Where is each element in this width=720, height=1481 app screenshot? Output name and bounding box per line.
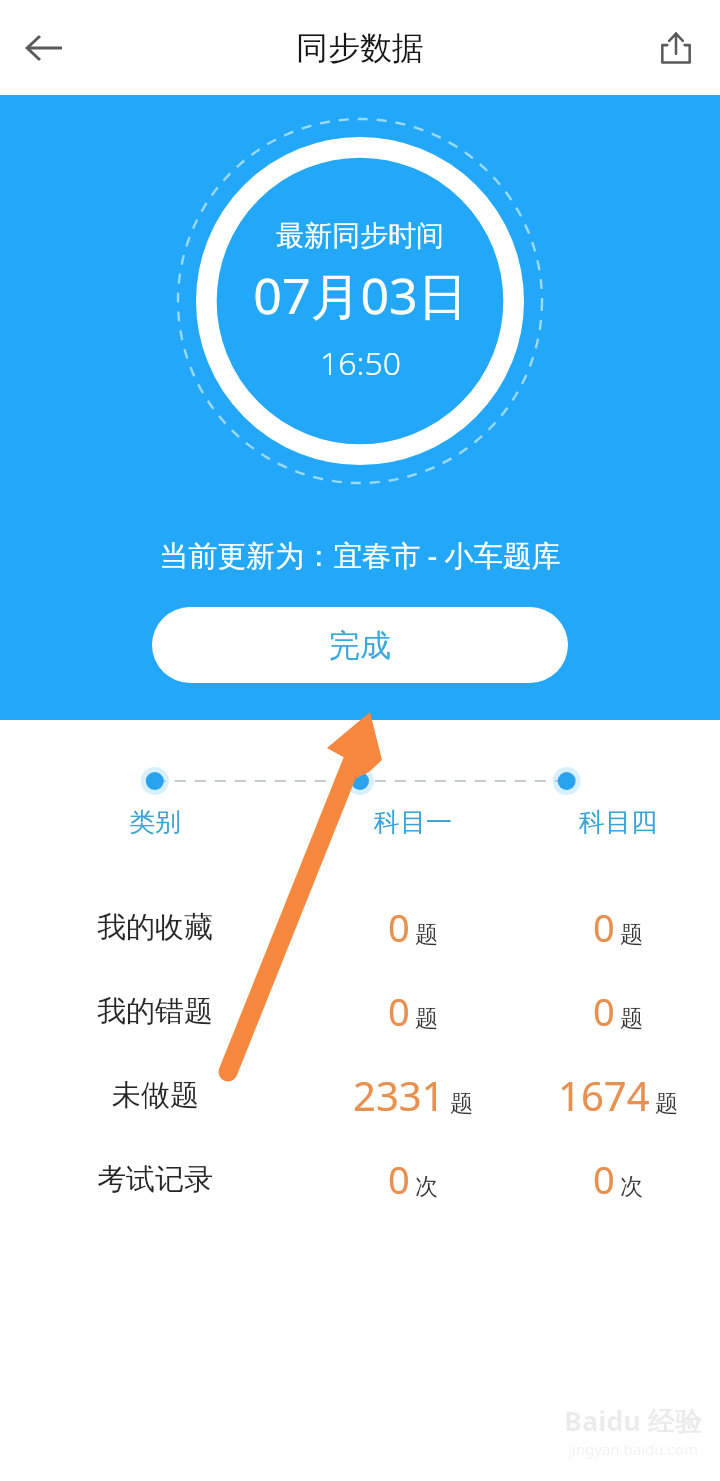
staticText: 题 (415, 1004, 438, 1033)
button[interactable]: Share (644, 16, 708, 80)
staticText: 题 (655, 1089, 678, 1118)
staticText: 0 (593, 901, 615, 953)
staticText: 当前更新为：宜春市 - 小车题库 (159, 535, 561, 575)
staticText: 07月03日 (253, 261, 468, 329)
staticText: 最新同步时间 (276, 218, 444, 253)
staticText: 16:50 (320, 341, 401, 385)
staticText: 类别 (129, 806, 181, 839)
button[interactable]: 完成 (152, 607, 568, 683)
staticText: 题 (450, 1089, 473, 1118)
staticText: 0 (388, 1153, 410, 1205)
staticText: 科目一 (374, 806, 452, 839)
staticText: 题 (415, 920, 438, 949)
staticText: jingyan.baidu.com (568, 1439, 698, 1459)
staticText: 题 (620, 1004, 643, 1033)
staticText: 我的收藏 (97, 909, 213, 946)
staticText: 同步数据 (296, 28, 424, 68)
staticText: 完成 (329, 626, 391, 665)
button[interactable]: Back (12, 16, 76, 80)
staticText: 科目四 (579, 806, 657, 839)
staticText: 题 (620, 920, 643, 949)
staticText: Baidu 经验 (564, 1402, 702, 1439)
staticText: 0 (388, 901, 410, 953)
staticText: 0 (593, 985, 615, 1037)
staticText: 1674 (558, 1068, 650, 1122)
staticText: 考试记录 (97, 1161, 213, 1198)
staticText: 2331 (353, 1068, 445, 1122)
staticText: 0 (388, 985, 410, 1037)
staticText: 次 (620, 1172, 643, 1201)
staticText: 次 (415, 1172, 438, 1201)
staticText: 未做题 (112, 1077, 199, 1114)
staticText: 我的错题 (97, 993, 213, 1030)
staticText: 0 (593, 1153, 615, 1205)
